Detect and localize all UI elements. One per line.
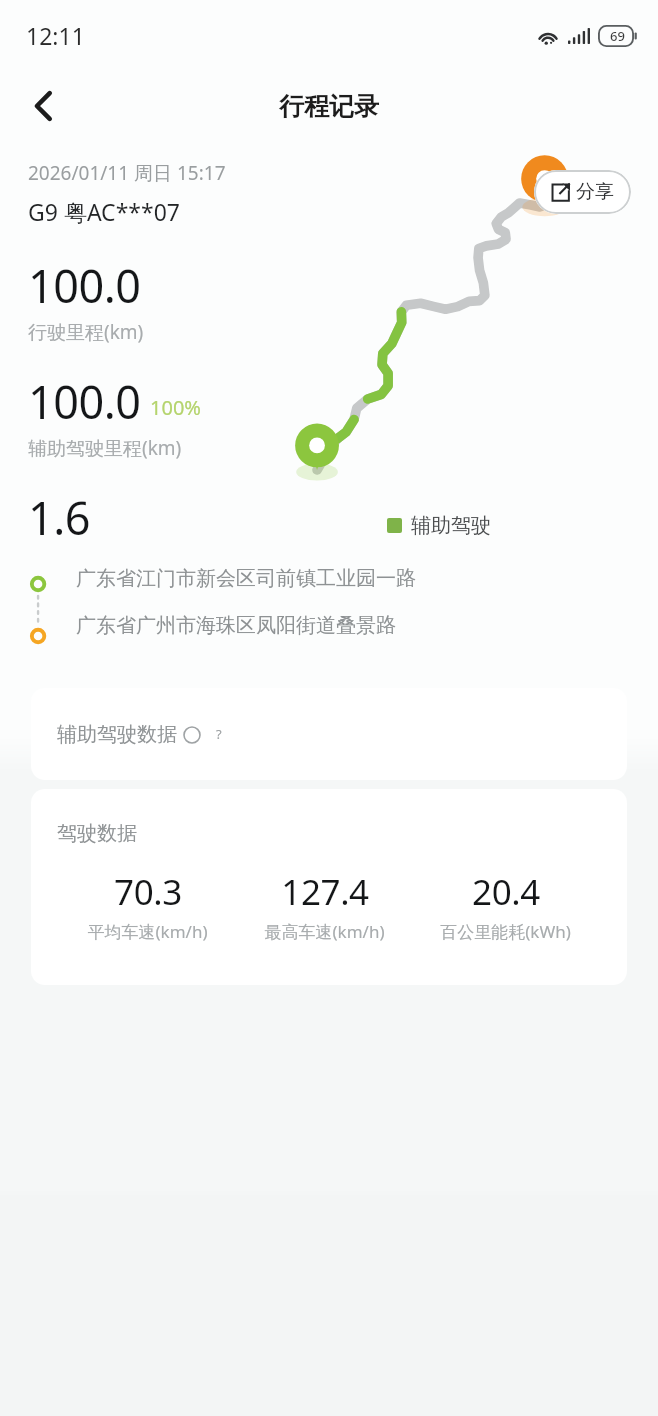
staticText: 2026/01/11 周日 15:17 <box>28 160 226 186</box>
button[interactable]: Back <box>14 77 72 135</box>
staticText: 广东省江门市新会区司前镇工业园一路 <box>76 566 416 591</box>
staticText: 行驶里程(km) <box>28 319 144 345</box>
staticText: G9 粤AC***07 <box>28 196 180 227</box>
staticText: 辅助驾驶 <box>411 513 491 538</box>
staticText: 平均车速(km/h) <box>87 920 208 943</box>
staticText: ? <box>216 725 222 743</box>
staticText: 69 <box>610 27 625 45</box>
staticText: 行程记录 <box>279 91 379 122</box>
staticText: 广东省广州市海珠区凤阳街道叠景路 <box>76 613 396 638</box>
staticText: 百公里能耗(kWh) <box>440 920 571 943</box>
button[interactable]: 辅助驾驶数据 <box>31 688 627 780</box>
staticText: 最高车速(km/h) <box>264 920 385 943</box>
staticText: 20.4 <box>472 868 540 916</box>
staticText: 100.0 <box>28 255 141 316</box>
staticText: 100% <box>150 394 201 421</box>
staticText: 辅助驾驶里程(km) <box>28 435 182 461</box>
button[interactable]: 分享 <box>534 170 631 214</box>
staticText: 分享 <box>576 180 614 204</box>
staticText: 100.0 <box>28 371 141 432</box>
staticText: 70.3 <box>114 868 182 916</box>
staticText: 1.6 <box>28 487 91 544</box>
button[interactable]: 驾驶数据 <box>31 789 627 985</box>
staticText: 辅助驾驶数据 <box>57 722 177 747</box>
staticText: 驾驶数据 <box>57 821 137 846</box>
staticText: 12:11 <box>26 20 85 51</box>
staticText: 127.4 <box>281 868 369 916</box>
